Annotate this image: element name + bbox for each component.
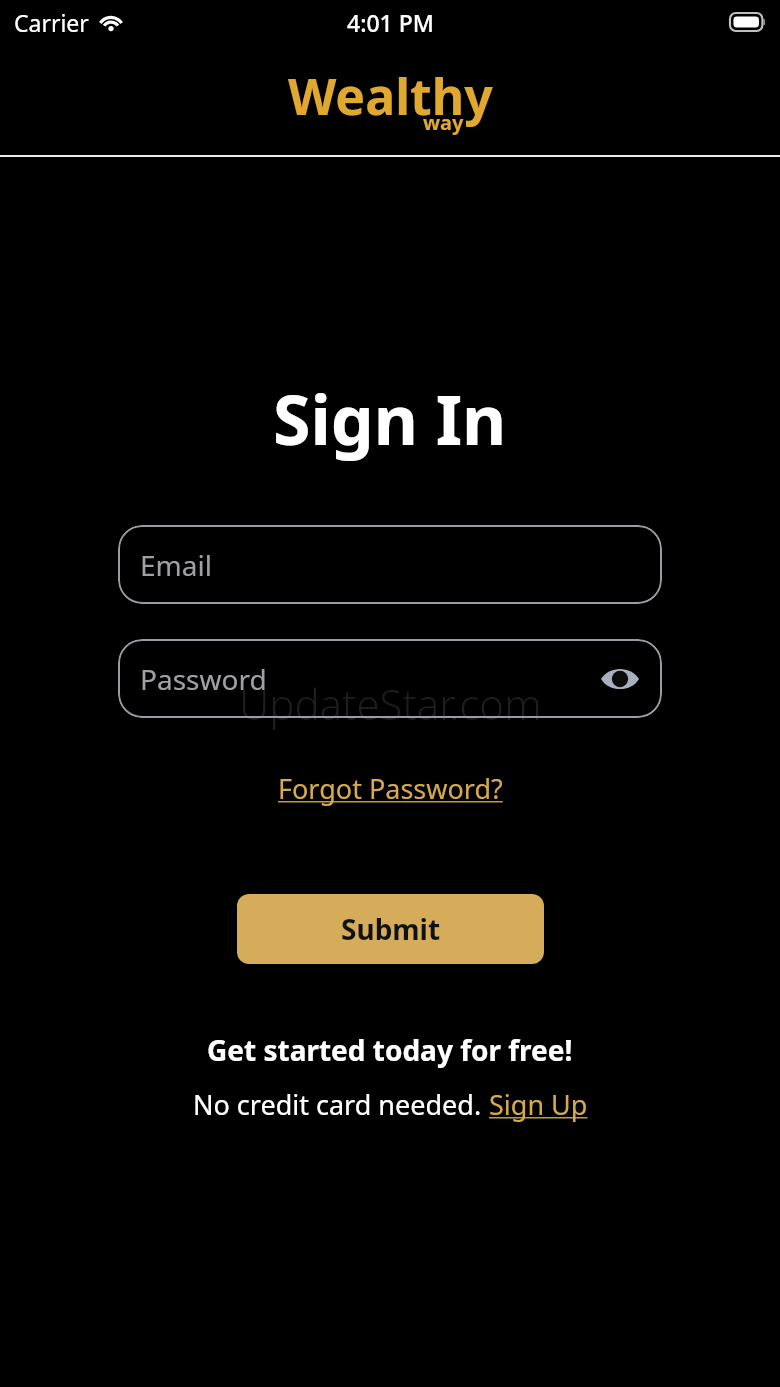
staticText: Sign In: [273, 372, 507, 465]
button[interactable]: Forgot Password?: [272, 767, 509, 810]
staticText: Forgot Password?: [278, 770, 503, 807]
staticText: Submit: [341, 910, 441, 948]
staticText: Email: [140, 546, 212, 584]
button[interactable]: Sign Up: [489, 1086, 588, 1123]
button[interactable]: Submit: [237, 894, 544, 964]
staticText: No credit card needed.: [193, 1086, 489, 1123]
staticText: UpdateStar.com: [239, 675, 542, 732]
staticText: Password: [140, 660, 267, 698]
button[interactable]: Show password: [598, 657, 642, 701]
staticText: Get started today for free!: [207, 1031, 573, 1069]
staticText: Carrier: [14, 7, 89, 38]
staticText: 4:01 PM: [347, 7, 434, 38]
staticText: way: [423, 109, 464, 136]
button[interactable]: Password: [118, 639, 662, 718]
staticText: Sign Up: [489, 1086, 588, 1123]
staticText: Wealthy: [288, 62, 493, 130]
button[interactable]: Email: [118, 525, 662, 604]
